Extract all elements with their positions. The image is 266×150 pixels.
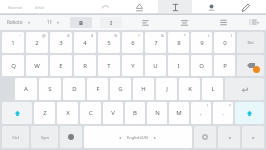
- button[interactable]: R: [74, 55, 96, 76]
- button[interactable]: Z: [34, 102, 55, 124]
- button[interactable]: C: [80, 102, 101, 124]
- staticText: Del: [247, 40, 254, 45]
- button[interactable]: .: [213, 102, 233, 124]
- staticText: J: [166, 85, 168, 93]
- staticText: Arial: [35, 5, 44, 10]
- button[interactable]: A: [15, 78, 37, 100]
- button[interactable]: Bold: [70, 17, 92, 28]
- button[interactable]: Emoji: [60, 126, 82, 148]
- button[interactable]: 7: [145, 32, 166, 53]
- staticText: X: [66, 109, 70, 117]
- button[interactable]: ,: [191, 102, 211, 124]
- button[interactable]: 1: [2, 32, 24, 53]
- button[interactable]: 8: [168, 32, 189, 53]
- button[interactable]: Shift right: [235, 102, 264, 124]
- button[interactable]: Text cursor: [158, 0, 192, 14]
- button[interactable]: Italic: [100, 17, 122, 28]
- button[interactable]: 4: [74, 32, 96, 53]
- button[interactable]: Q: [2, 55, 24, 76]
- button[interactable]: Align left: [130, 15, 160, 30]
- button[interactable]: Text color: [124, 0, 154, 14]
- staticText: Normal: [8, 5, 23, 10]
- button[interactable]: V: [103, 102, 123, 124]
- staticText: D: [72, 85, 77, 93]
- button[interactable]: ▾: [55, 18, 62, 27]
- button[interactable]: 6: [122, 32, 143, 53]
- button[interactable]: I: [168, 55, 189, 76]
- staticText: W: [34, 62, 40, 70]
- staticText: ▸: [252, 135, 255, 140]
- staticText: V: [111, 109, 115, 117]
- button[interactable]: Line spacing: [208, 15, 238, 30]
- staticText: P: [223, 62, 227, 70]
- button[interactable]: Undo: [90, 0, 120, 14]
- button[interactable]: U: [145, 55, 166, 76]
- staticText: ▾: [257, 20, 260, 25]
- staticText: H: [141, 85, 146, 93]
- button[interactable]: 0: [214, 32, 235, 53]
- button[interactable]: Backspace: [237, 55, 264, 76]
- staticText: Sym: [41, 135, 49, 140]
- button[interactable]: Insert image: [196, 0, 226, 14]
- staticText: *: [184, 33, 187, 38]
- button[interactable]: T: [98, 55, 120, 76]
- button[interactable]: Shift: [2, 102, 32, 124]
- button[interactable]: ▾: [26, 18, 33, 27]
- staticText: S: [48, 85, 52, 93]
- button[interactable]: Normal: [6, 3, 25, 12]
- button[interactable]: N: [147, 102, 167, 124]
- button[interactable]: Settings: [194, 126, 216, 148]
- staticText: #: [67, 33, 70, 38]
- button[interactable]: 11: [45, 17, 55, 27]
- button[interactable]: Align center: [169, 15, 199, 30]
- button[interactable]: Roboto: [4, 17, 26, 27]
- button[interactable]: B: [125, 102, 145, 124]
- button[interactable]: ▸: [242, 126, 264, 148]
- button[interactable]: ◂: [218, 126, 240, 148]
- button[interactable]: O: [191, 55, 212, 76]
- button[interactable]: Lists: [247, 16, 262, 28]
- staticText: B: [133, 109, 137, 117]
- button[interactable]: F: [87, 78, 108, 100]
- staticText: &: [161, 33, 164, 38]
- button[interactable]: Del: [237, 32, 264, 53]
- staticText: ▾: [28, 20, 31, 25]
- button[interactable]: P: [214, 55, 235, 76]
- staticText: A: [24, 85, 28, 93]
- button[interactable]: L: [202, 78, 223, 100]
- button[interactable]: Sym: [31, 126, 58, 148]
- button[interactable]: 9: [191, 32, 212, 53]
- button[interactable]: Y: [122, 55, 143, 76]
- staticText: 0: [223, 39, 227, 47]
- button[interactable]: M: [169, 102, 189, 124]
- button[interactable]: E: [50, 55, 72, 76]
- button[interactable]: H: [133, 78, 154, 100]
- button[interactable]: W: [26, 55, 48, 76]
- staticText: 7: [154, 39, 158, 47]
- staticText: (: [208, 33, 210, 38]
- staticText: Q: [11, 62, 16, 70]
- button[interactable]: D: [63, 78, 85, 100]
- button[interactable]: Ctrl: [2, 126, 29, 148]
- button[interactable]: Notification: [253, 66, 260, 73]
- button[interactable]: ◂: [84, 126, 192, 148]
- staticText: %: [114, 33, 118, 38]
- button[interactable]: S: [39, 78, 61, 100]
- staticText: Roboto: [7, 19, 23, 25]
- button[interactable]: Highlight: [230, 0, 260, 14]
- staticText: N: [155, 109, 160, 117]
- staticText: R: [83, 62, 87, 70]
- staticText: ◂: [119, 135, 122, 140]
- button[interactable]: 3: [50, 32, 72, 53]
- staticText: 5: [107, 39, 111, 47]
- button[interactable]: Arial: [33, 3, 46, 12]
- staticText: 4: [83, 39, 87, 47]
- button[interactable]: 5: [98, 32, 120, 53]
- button[interactable]: 2: [26, 32, 48, 53]
- button[interactable]: X: [57, 102, 78, 124]
- button[interactable]: K: [179, 78, 200, 100]
- button[interactable]: G: [110, 78, 131, 100]
- staticText: I: [110, 19, 113, 27]
- button[interactable]: Enter: [225, 78, 264, 100]
- button[interactable]: J: [156, 78, 177, 100]
